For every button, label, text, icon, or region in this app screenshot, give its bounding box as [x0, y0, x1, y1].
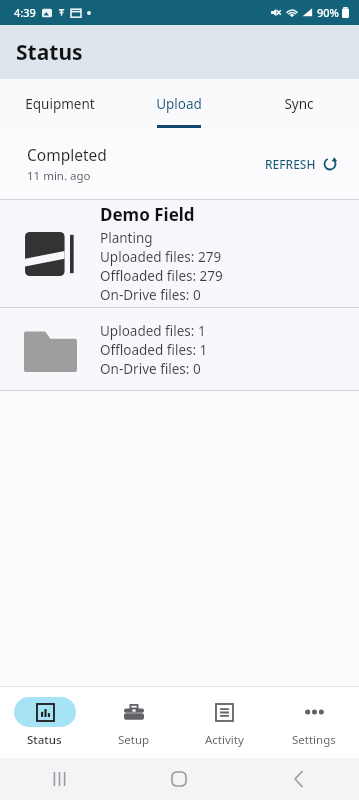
staticText: 11 min. ago: [27, 168, 91, 184]
button[interactable]: Demo Field: [0, 200, 359, 307]
staticText: Planting: [100, 229, 153, 247]
staticText: Settings: [292, 732, 336, 748]
button[interactable]: Sync: [239, 79, 359, 128]
staticText: On-Drive files: 0: [100, 286, 201, 304]
staticText: Demo Field: [100, 203, 195, 226]
staticText: REFRESH: [265, 156, 316, 172]
staticText: Offloaded files: 279: [100, 267, 223, 285]
button[interactable]: Setup: [89, 686, 179, 758]
staticText: Setup: [118, 732, 150, 748]
button[interactable]: Activity: [179, 686, 269, 758]
staticText: On-Drive files: 0: [100, 360, 201, 378]
staticText: Equipment: [25, 95, 95, 113]
staticText: Status: [27, 732, 62, 748]
button[interactable]: Upload: [119, 79, 239, 128]
staticText: Upload: [156, 95, 202, 113]
button[interactable]: Settings: [269, 686, 359, 758]
staticText: Offloaded files: 1: [100, 341, 208, 359]
staticText: 4:39: [14, 5, 36, 20]
button[interactable]: Equipment: [0, 79, 119, 128]
button[interactable]: Home: [172, 772, 186, 786]
staticText: Activity: [205, 732, 244, 748]
button[interactable]: REFRESH: [257, 150, 345, 178]
button[interactable]: Uploaded files: 1: [0, 308, 359, 390]
button[interactable]: Status: [0, 686, 89, 758]
staticText: Sync: [284, 95, 314, 113]
staticText: Uploaded files: 279: [100, 248, 222, 266]
staticText: Status: [16, 38, 83, 67]
button[interactable]: Back: [294, 771, 304, 787]
staticText: Completed: [27, 144, 107, 165]
staticText: 90%: [317, 5, 339, 20]
staticText: Uploaded files: 1: [100, 322, 206, 340]
button[interactable]: Recent apps: [52, 772, 67, 786]
